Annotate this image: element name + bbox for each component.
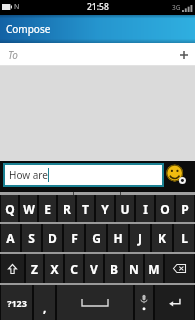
staticText: O [160, 201, 170, 217]
button[interactable]: F [64, 224, 84, 252]
staticText: 3G [172, 3, 181, 12]
button[interactable]: Shift [1, 254, 24, 283]
staticText: T [82, 201, 89, 217]
button[interactable]: R [58, 195, 75, 222]
staticText: N [129, 261, 139, 277]
staticText: A [6, 230, 15, 246]
button[interactable]: E [39, 195, 56, 222]
staticText: M [148, 261, 160, 277]
staticText: H [113, 230, 123, 246]
button[interactable]: V [85, 254, 103, 283]
button[interactable]: S [22, 224, 41, 252]
staticText: To [8, 48, 18, 62]
button[interactable]: How are [5, 165, 162, 185]
button[interactable]: C [65, 254, 83, 283]
staticText: G [92, 230, 101, 246]
button[interactable]: M [145, 254, 163, 283]
button[interactable]: G [86, 224, 106, 252]
button[interactable]: N [125, 254, 143, 283]
button[interactable]: P [176, 195, 194, 222]
button[interactable]: W [20, 195, 37, 222]
staticText: D [48, 230, 57, 246]
staticText: Y [101, 201, 109, 217]
staticText: How are [9, 168, 48, 182]
button[interactable]: Compose [0, 15, 195, 43]
staticText: K [158, 230, 166, 246]
staticText: E [44, 201, 51, 217]
staticText: N [14, 2, 20, 12]
button[interactable]: ?123 [1, 285, 32, 320]
button[interactable]: U [116, 195, 134, 222]
staticText: C [70, 261, 78, 277]
staticText: S [28, 230, 35, 246]
staticText: Z [31, 261, 38, 277]
staticText: L [181, 230, 188, 246]
button[interactable]: O [156, 195, 174, 222]
staticText: 21:58 [87, 1, 109, 13]
button[interactable]: Y [96, 195, 114, 222]
button[interactable]: T [77, 195, 94, 222]
staticText: R [63, 201, 71, 217]
button[interactable]: A [1, 224, 20, 252]
staticText: B [110, 261, 118, 277]
button[interactable]: D [43, 224, 62, 252]
button[interactable]: Emoji [164, 163, 193, 187]
button[interactable]: K [152, 224, 172, 252]
staticText: X [50, 261, 59, 277]
button[interactable]: Q [1, 195, 18, 222]
staticText: Compose [6, 22, 51, 36]
staticText: U [120, 201, 130, 217]
staticText: I [143, 201, 148, 217]
button[interactable]: Comma [34, 285, 55, 320]
button[interactable]: Backspace [165, 254, 194, 283]
button[interactable]: H [108, 224, 128, 252]
staticText: V [90, 261, 98, 277]
staticText: , [43, 299, 47, 315]
staticText: W [23, 201, 35, 217]
staticText: F [71, 230, 78, 246]
button[interactable]: Add recipient [173, 44, 195, 66]
button[interactable]: I [136, 195, 154, 222]
staticText: Q [5, 201, 15, 217]
button[interactable]: Z [26, 254, 43, 283]
staticText: P [181, 201, 189, 217]
button[interactable]: J [130, 224, 150, 252]
staticText: J [138, 230, 142, 246]
button[interactable]: L [174, 224, 194, 252]
button[interactable]: Period and voice input [135, 285, 153, 320]
button[interactable]: Space [57, 285, 133, 320]
button[interactable]: Enter [155, 285, 194, 320]
staticText: ?123 [7, 297, 27, 309]
button[interactable]: B [105, 254, 123, 283]
button[interactable]: X [45, 254, 63, 283]
